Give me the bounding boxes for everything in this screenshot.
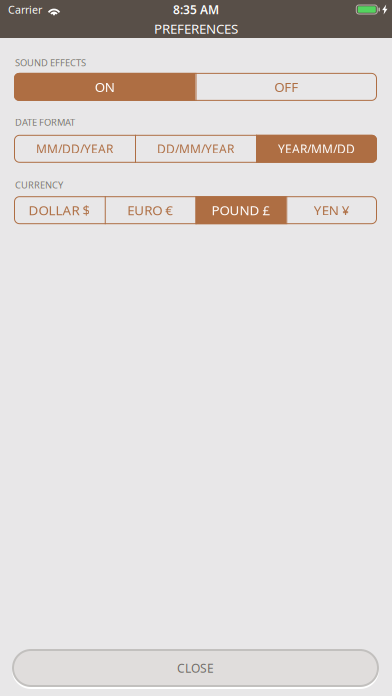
button[interactable]: DD/MM/YEAR	[135, 135, 256, 163]
staticText: EURO €	[127, 201, 173, 219]
button[interactable]: DOLLAR $	[14, 196, 105, 224]
button[interactable]: YEN ¥	[286, 196, 377, 224]
staticText: CURRENCY	[15, 179, 63, 191]
staticText: ON	[95, 78, 115, 96]
staticText: CLOSE	[177, 660, 214, 676]
button[interactable]: OFF	[195, 73, 377, 101]
staticText: POUND £	[211, 201, 270, 219]
button[interactable]: YEAR/MM/DD	[256, 135, 377, 163]
button[interactable]: MM/DD/YEAR	[14, 135, 135, 163]
staticText: YEAR/MM/DD	[278, 141, 355, 157]
staticText: Carrier	[8, 2, 42, 17]
staticText: YEN ¥	[314, 201, 350, 219]
staticText: OFF	[274, 78, 298, 96]
button[interactable]: CLOSE	[12, 648, 379, 688]
button[interactable]: EURO €	[105, 196, 196, 224]
staticText: SOUND EFFECTS	[15, 56, 86, 69]
staticText: MM/DD/YEAR	[36, 141, 113, 157]
staticText: 8:35 AM	[173, 1, 219, 17]
staticText: PREFERENCES	[154, 20, 238, 37]
staticText: DATE FORMAT	[15, 116, 75, 128]
staticText: DOLLAR $	[28, 201, 90, 219]
button[interactable]: POUND £	[195, 196, 286, 224]
staticText: DD/MM/YEAR	[157, 141, 234, 157]
button[interactable]: ON	[14, 73, 195, 101]
